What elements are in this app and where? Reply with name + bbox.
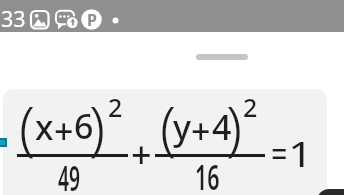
- staticText: 2: [243, 90, 258, 124]
- button[interactable]: [317, 189, 344, 195]
- staticText: 16: [195, 153, 220, 195]
- staticText: ): [89, 87, 106, 166]
- staticText: x: [35, 104, 54, 150]
- button[interactable]: [0, 138, 7, 147]
- staticText: =: [271, 129, 288, 178]
- staticText: (: [160, 87, 177, 166]
- staticText: P: [87, 9, 97, 31]
- staticText: 6: [74, 103, 94, 149]
- staticText: +: [54, 108, 74, 154]
- button[interactable]: [196, 54, 248, 60]
- staticText: ): [226, 87, 243, 166]
- staticText: 4: [212, 104, 232, 150]
- staticText: 33: [1, 4, 26, 33]
- staticText: (: [19, 87, 36, 166]
- staticText: y: [173, 104, 191, 150]
- staticText: 49: [58, 154, 80, 195]
- staticText: 2: [108, 90, 123, 124]
- staticText: +: [191, 108, 211, 154]
- button[interactable]: [3, 89, 327, 195]
- staticText: 1: [288, 130, 314, 178]
- staticText: +: [131, 130, 152, 179]
